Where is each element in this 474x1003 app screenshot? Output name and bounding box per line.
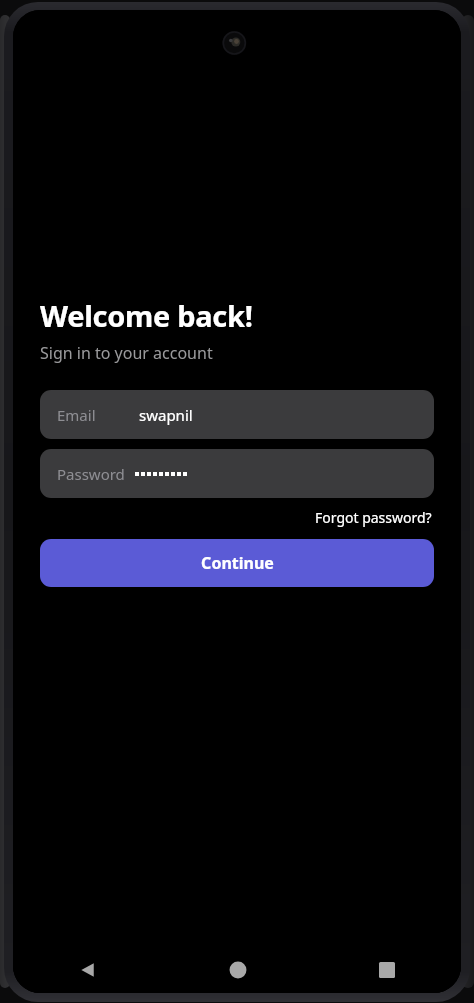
button[interactable]: Back [13,947,163,993]
staticText: Password [57,464,125,484]
staticText: Sign in to your account [40,342,213,364]
button[interactable]: Continue [40,539,434,587]
button[interactable]: Email [40,390,434,439]
staticText: Forgot password? [315,508,432,527]
button[interactable]: Home [163,947,312,993]
staticText: Email [57,405,96,425]
button[interactable]: Forgot password? [313,506,434,529]
staticText: Welcome back! [40,296,253,335]
button[interactable]: Recent apps [312,947,461,993]
button[interactable]: Password [40,449,434,498]
staticText: swapnil [139,405,193,425]
staticText: Continue [201,552,274,574]
